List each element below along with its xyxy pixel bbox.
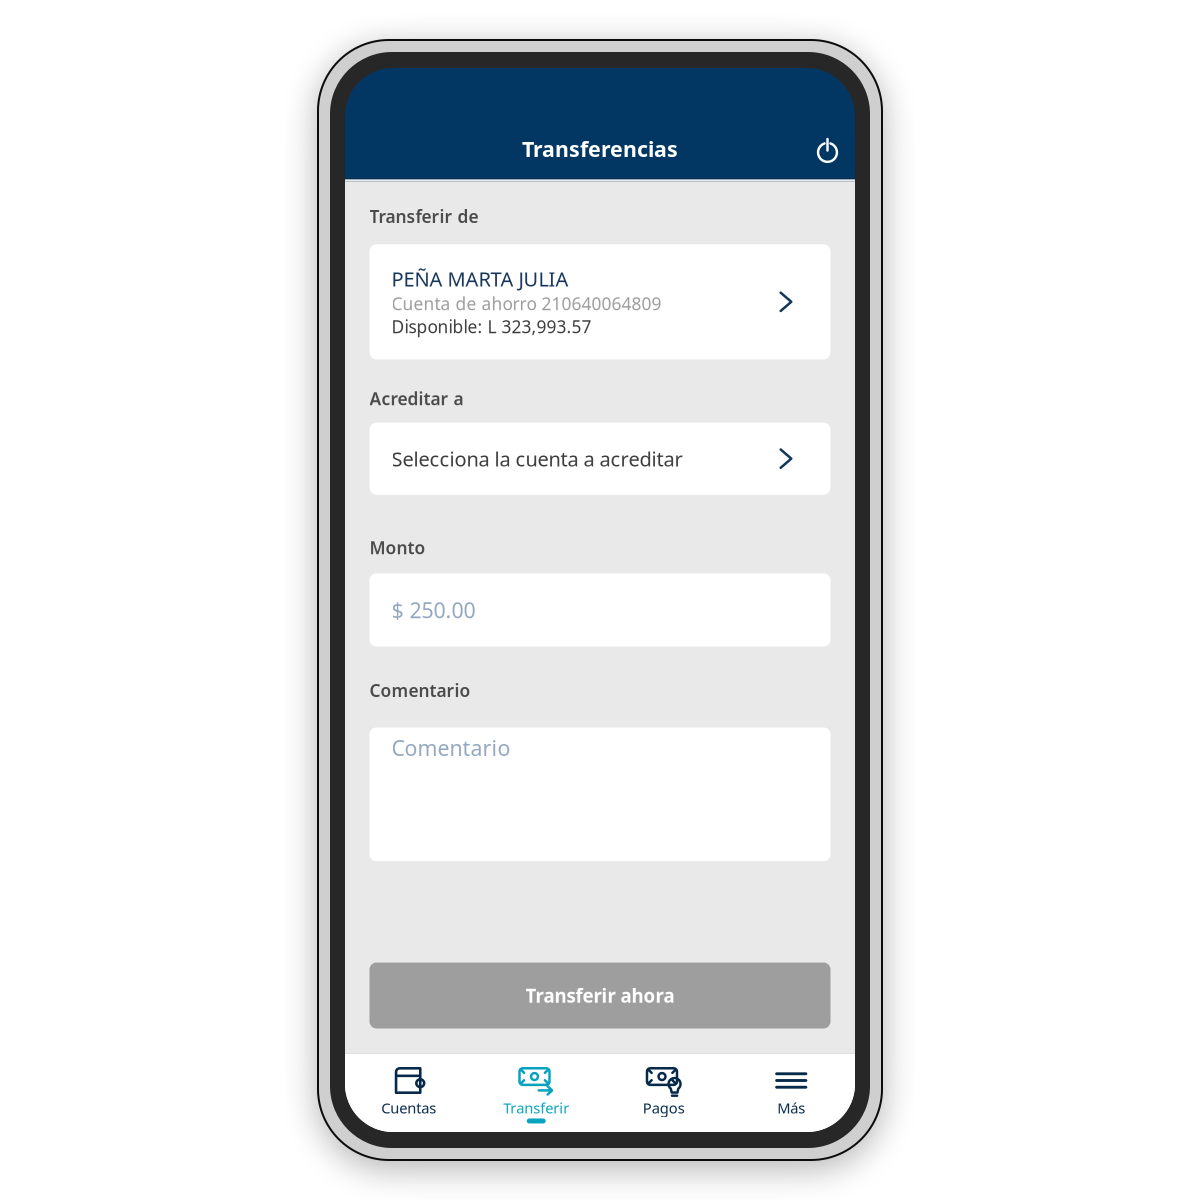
button[interactable]: Comentario (369, 727, 830, 861)
staticText: Acreditar a (369, 387, 463, 410)
staticText: Monto (369, 536, 425, 559)
staticText: Transferir de (369, 205, 478, 228)
button[interactable]: Cuentas (345, 1053, 472, 1132)
staticText: Comentario (369, 679, 470, 702)
staticText: Transferir (503, 1098, 569, 1117)
staticText: Transferir ahora (525, 983, 674, 1008)
button[interactable]: Cerrar sesión (806, 130, 848, 172)
staticText: Más (777, 1098, 805, 1117)
button[interactable]: Transferir ahora (369, 962, 830, 1028)
staticText: Cuentas (381, 1098, 436, 1117)
button[interactable]: Selecciona la cuenta a acreditar (369, 422, 830, 495)
staticText: Disponible: L 323,993.57 (391, 315, 591, 338)
staticText: Transferencias (522, 135, 678, 163)
button[interactable]: $ 250.00 (369, 573, 830, 647)
staticText: $ 250.00 (391, 596, 475, 624)
staticText: Comentario (391, 733, 510, 762)
button[interactable]: Transferir (472, 1053, 600, 1132)
staticText: Pagos (643, 1098, 685, 1117)
button[interactable]: PEÑA MARTA JULIA (369, 244, 830, 359)
staticText: Cuenta de ahorro 210640064809 (391, 292, 661, 315)
button[interactable]: Pagos (600, 1053, 727, 1132)
button[interactable]: Más (727, 1053, 855, 1132)
staticText: Selecciona la cuenta a acreditar (391, 445, 682, 472)
staticText: PEÑA MARTA JULIA (391, 265, 568, 292)
